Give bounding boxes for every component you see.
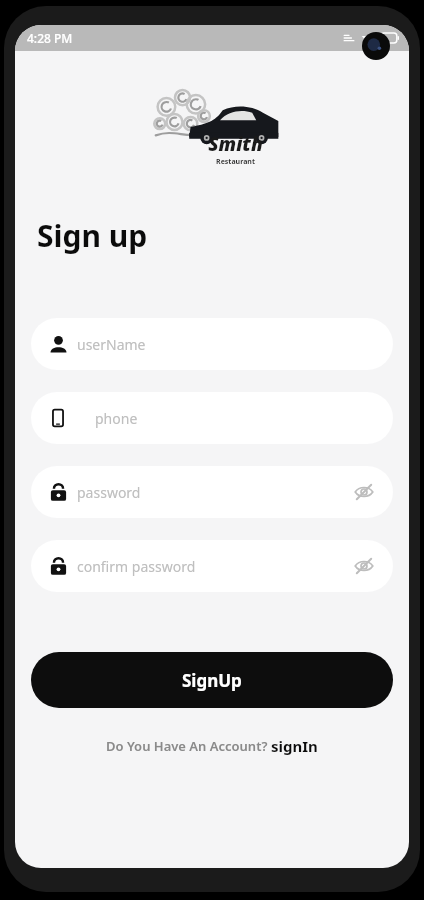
staticText: password [77, 483, 141, 502]
button[interactable]: Show password [353, 481, 375, 503]
button[interactable]: SignUp [31, 652, 393, 708]
button[interactable]: userName [31, 318, 393, 370]
staticText: SignUp [182, 669, 242, 692]
button[interactable]: signIn [271, 736, 318, 756]
button[interactable]: password [31, 466, 393, 518]
staticText: Sign up [37, 215, 148, 256]
staticText: signIn [271, 736, 318, 756]
staticText: 4:28 PM [27, 30, 73, 46]
staticText: Smith [208, 131, 263, 157]
staticText: confirm password [77, 557, 196, 576]
staticText: phone [95, 409, 138, 428]
button[interactable]: phone [31, 392, 393, 444]
button[interactable]: Show password [353, 555, 375, 577]
staticText: Restaurant [216, 157, 255, 167]
staticText: userName [77, 335, 146, 354]
staticText: Do You Have An Account? [106, 737, 271, 755]
button[interactable]: confirm password [31, 540, 393, 592]
